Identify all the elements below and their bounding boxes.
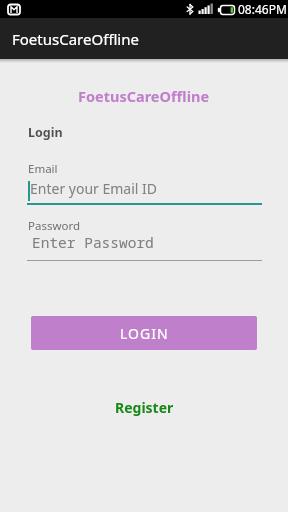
button[interactable]: LOGIN (31, 316, 257, 350)
staticText: Password (28, 218, 81, 234)
staticText: LOGIN (120, 324, 169, 343)
staticText: Email (28, 161, 58, 177)
staticText: 08:46PM (238, 1, 287, 17)
staticText: FoetusCareOffline (78, 86, 210, 106)
staticText: Enter your Email ID (30, 179, 158, 198)
staticText: Enter Password (32, 232, 154, 252)
staticText: Login (28, 124, 63, 141)
staticText: FoetusCareOffline (12, 29, 139, 49)
button[interactable]: Register (111, 394, 178, 421)
